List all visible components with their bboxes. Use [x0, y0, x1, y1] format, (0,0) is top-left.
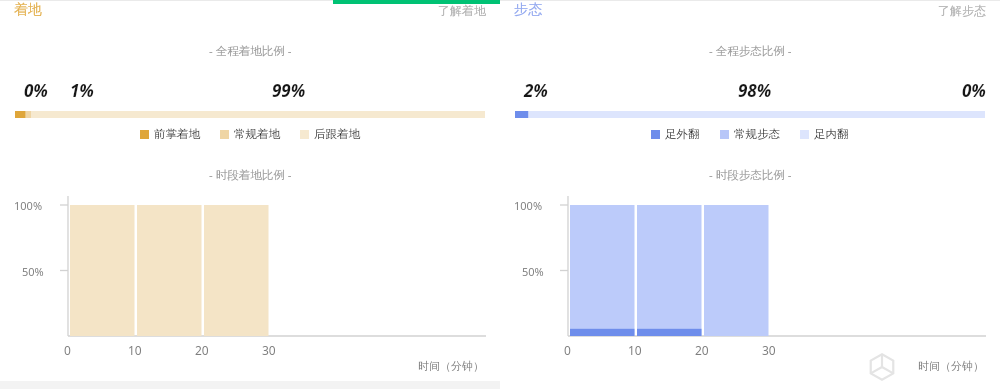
staticText: 0 [564, 342, 571, 358]
staticText: - 时段着地比例 - [209, 167, 292, 183]
staticText: 0 [64, 342, 71, 358]
staticText: 30 [262, 342, 276, 358]
staticText: 100% [14, 198, 43, 213]
staticText: 足内翻 [814, 127, 849, 141]
staticText: 30 [762, 342, 776, 358]
button[interactable]: 了解步态 [938, 3, 986, 18]
staticText: 20 [695, 342, 709, 358]
staticText: 10 [628, 342, 642, 358]
staticText: - 全程步态比例 - [709, 43, 792, 59]
button[interactable]: 足外翻 [648, 124, 703, 144]
button[interactable]: 足内翻 [797, 124, 852, 144]
staticText: - 全程着地比例 - [209, 43, 292, 59]
staticText: 99% [272, 79, 306, 102]
staticText: 前掌着地 [154, 127, 200, 141]
staticText: 50% [22, 264, 44, 279]
staticText: 时间（分钟） [418, 359, 484, 373]
staticText: - 时段步态比例 - [709, 167, 792, 183]
staticText: 0% [24, 79, 48, 102]
button[interactable]: 了解着地 [438, 3, 486, 18]
staticText: 100% [514, 198, 543, 213]
staticText: 98% [738, 79, 772, 102]
staticText: 足外翻 [665, 127, 700, 141]
staticText: 20 [195, 342, 209, 358]
button[interactable]: 步态 [514, 1, 542, 19]
staticText: 50% [522, 264, 544, 279]
staticText: 2% [524, 79, 548, 102]
button[interactable]: 后跟着地 [297, 124, 363, 144]
staticText: 常规步态 [734, 127, 780, 141]
button[interactable]: 常规步态 [717, 124, 783, 144]
staticText: 时间（分钟） [918, 359, 984, 373]
staticText: 后跟着地 [314, 127, 360, 141]
button[interactable]: 着地 [14, 1, 42, 19]
staticText: 常规着地 [234, 127, 280, 141]
staticText: 1% [70, 79, 94, 102]
staticText: 10 [128, 342, 142, 358]
staticText: 0% [962, 79, 986, 102]
button[interactable]: 前掌着地 [137, 124, 203, 144]
button[interactable]: 常规着地 [217, 124, 283, 144]
